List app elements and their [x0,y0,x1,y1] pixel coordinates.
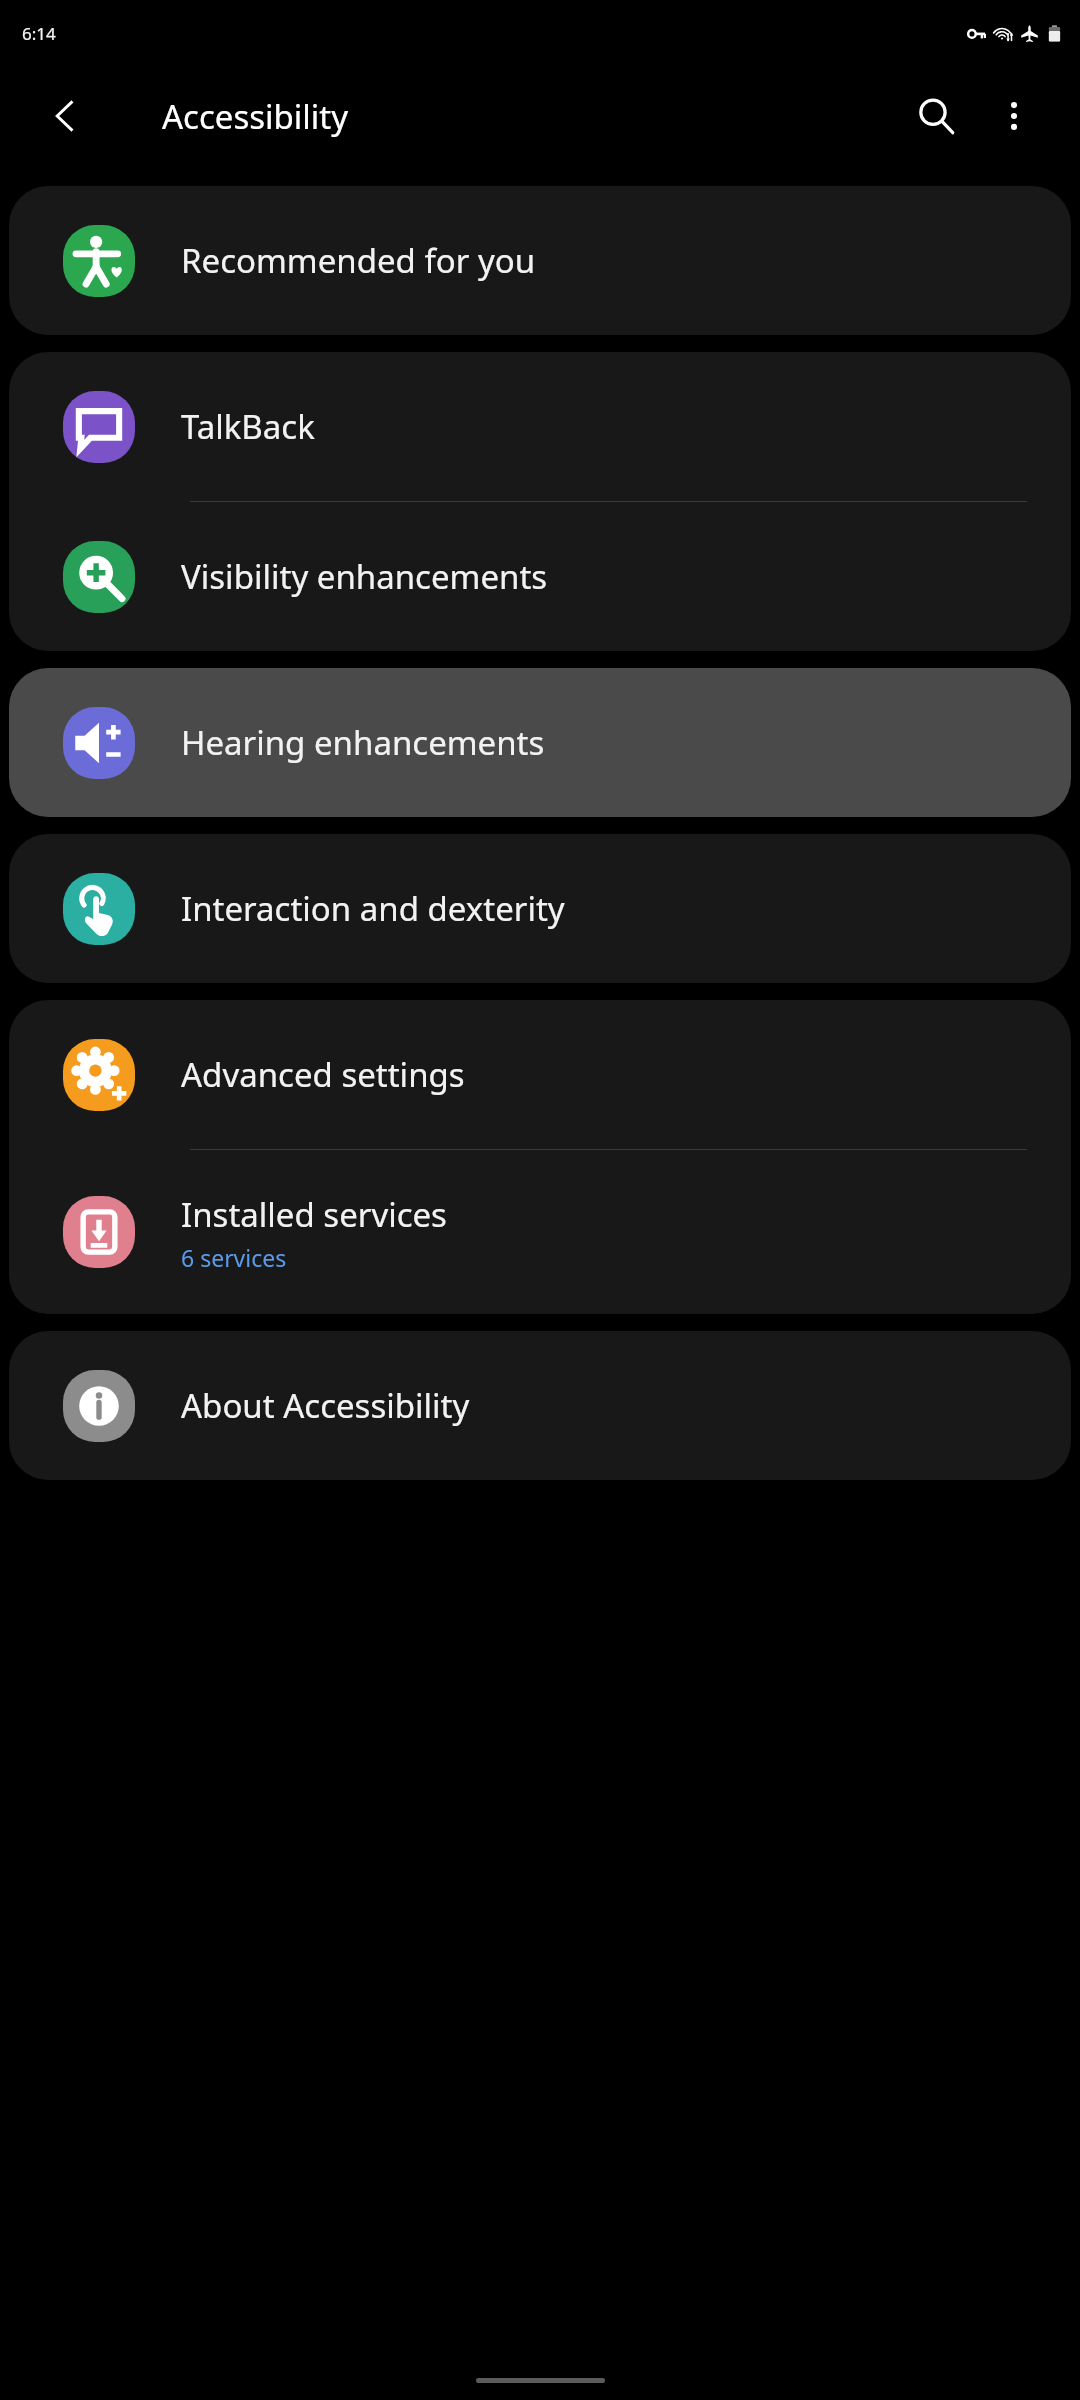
button[interactable]: Advanced settings [9,1000,1071,1149]
button[interactable]: About Accessibility [9,1331,1071,1480]
button[interactable]: Recommended for you [9,186,1071,335]
button[interactable]: Visibility enhancements [9,502,1071,651]
staticText: 6:14 [22,22,56,45]
staticText: Installed services [181,1192,447,1237]
button[interactable]: Back [40,90,92,142]
button[interactable]: More options [978,80,1050,152]
button[interactable]: Hearing enhancements [9,668,1071,817]
staticText: Visibility enhancements [181,554,548,599]
staticText: Recommended for you [181,238,536,283]
staticText: Advanced settings [181,1052,465,1097]
button[interactable]: Search [900,80,972,152]
staticText: TalkBack [181,404,315,449]
staticText: Accessibility [162,94,349,139]
staticText: Interaction and dexterity [181,886,565,931]
button[interactable]: Installed services [9,1150,1071,1314]
button[interactable]: Interaction and dexterity [9,834,1071,983]
staticText: Hearing enhancements [181,720,545,765]
button[interactable]: TalkBack [9,352,1071,501]
staticText: 6 services [181,1242,287,1273]
staticText: About Accessibility [181,1383,470,1428]
